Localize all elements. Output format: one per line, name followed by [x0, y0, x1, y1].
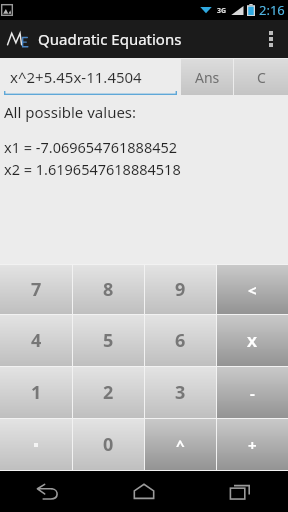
button[interactable]: 0: [73, 419, 144, 470]
staticText: ^: [176, 435, 185, 455]
button[interactable]: Recent apps: [192, 471, 288, 512]
button[interactable]: [0, 419, 72, 470]
button[interactable]: Back: [0, 471, 96, 512]
staticText: 3G: [217, 6, 227, 16]
button[interactable]: 9: [145, 265, 216, 314]
button[interactable]: X: [217, 315, 288, 366]
button[interactable]: 3: [145, 367, 216, 418]
button[interactable]: More options: [254, 20, 288, 58]
staticText: 3: [175, 380, 186, 405]
button[interactable]: 7: [0, 265, 72, 314]
staticText: +: [248, 435, 257, 455]
button[interactable]: Home: [96, 471, 192, 512]
staticText: 8: [103, 277, 114, 302]
staticText: 7: [31, 277, 42, 302]
button[interactable]: C: [234, 59, 288, 95]
button[interactable]: Ans: [181, 59, 233, 95]
button[interactable]: 8: [73, 265, 144, 314]
staticText: Ans: [195, 68, 220, 87]
staticText: 1: [31, 380, 42, 405]
staticText: <: [248, 280, 257, 300]
staticText: x2 = 1.6196547618884518: [4, 159, 181, 179]
staticText: 2:16: [259, 1, 285, 19]
staticText: C: [257, 68, 266, 87]
staticText: 0: [103, 432, 114, 457]
staticText: X: [247, 331, 258, 351]
staticText: -: [250, 383, 255, 403]
button[interactable]: 4: [0, 315, 72, 366]
staticText: 2: [103, 380, 114, 405]
button[interactable]: <: [217, 265, 288, 314]
button[interactable]: 5: [73, 315, 144, 366]
staticText: 4: [31, 328, 42, 353]
button[interactable]: 2: [73, 367, 144, 418]
staticText: All possible values:: [4, 102, 137, 122]
button[interactable]: x^2+5.45x-11.4504: [4, 61, 177, 95]
button[interactable]: +: [217, 419, 288, 470]
button[interactable]: -: [217, 367, 288, 418]
staticText: 9: [175, 277, 186, 302]
button[interactable]: 6: [145, 315, 216, 366]
staticText: x^2+5.45x-11.4504: [10, 67, 142, 87]
staticText: 6: [175, 328, 186, 353]
staticText: Quadratic Equations: [38, 29, 182, 49]
staticText: 5: [103, 328, 114, 353]
button[interactable]: ^: [145, 419, 216, 470]
button[interactable]: 1: [0, 367, 72, 418]
staticText: x1 = -7.069654761888452: [4, 137, 178, 157]
